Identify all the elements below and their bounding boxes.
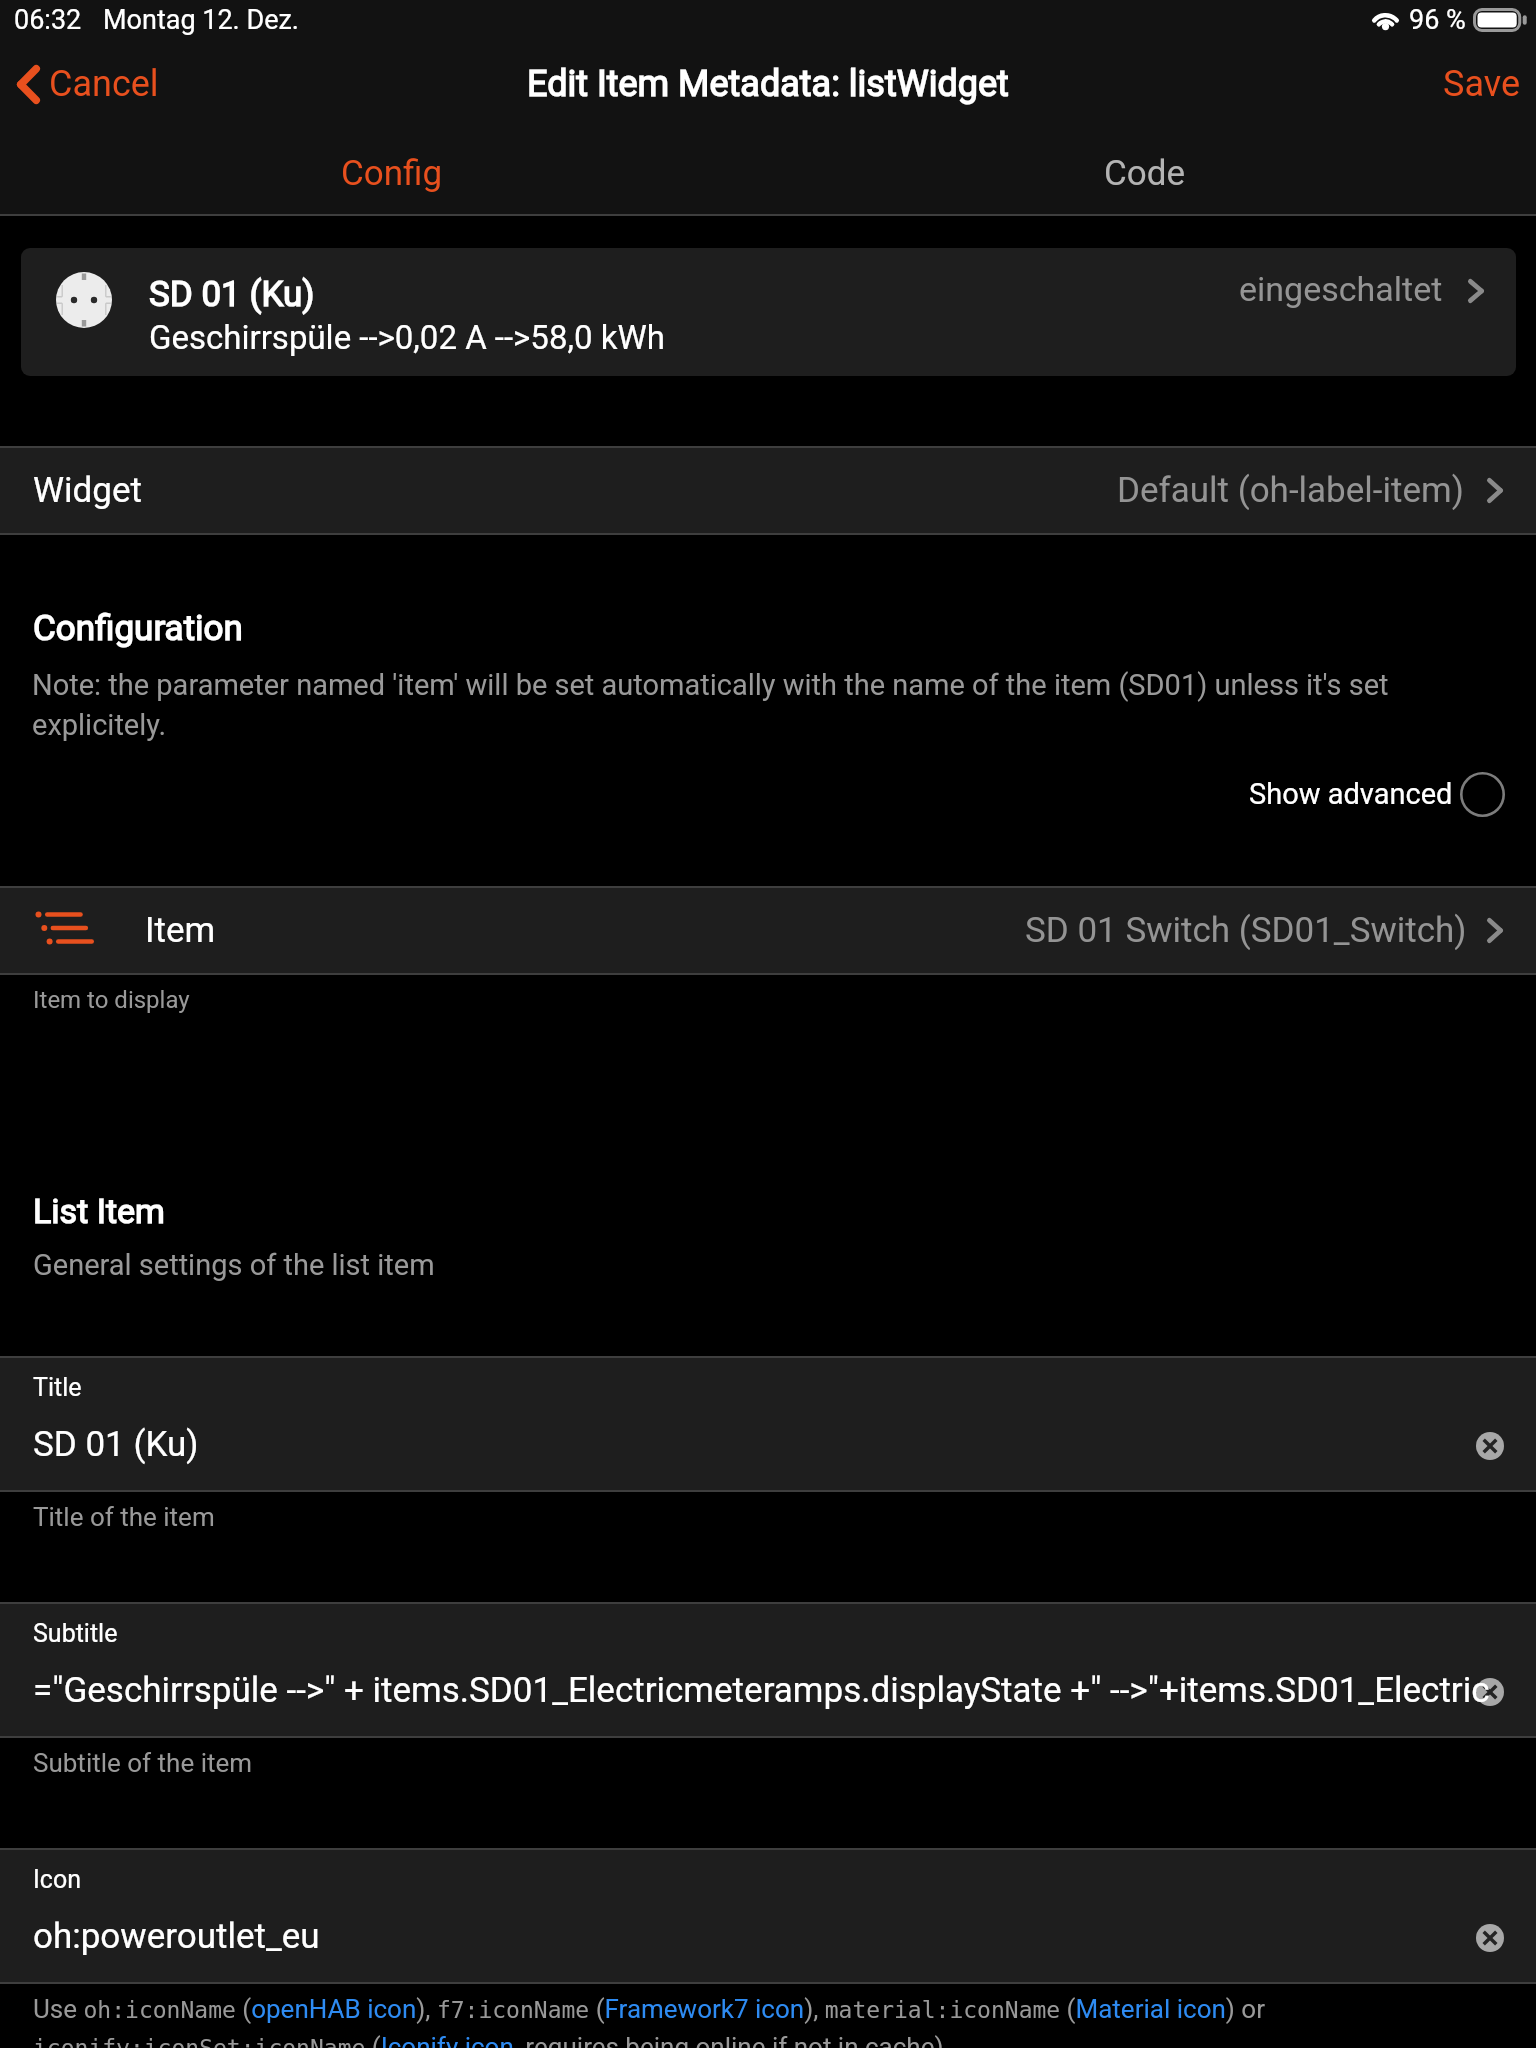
button[interactable]: Code — [768, 143, 1521, 203]
staticText: Use oh:iconName (openHAB icon), f7:iconN… — [33, 1994, 1473, 2048]
staticText: Item — [145, 910, 216, 951]
staticText: Show advanced — [1249, 777, 1453, 811]
staticText: 06:32 — [14, 4, 82, 36]
staticText: SD 01 (Ku) — [33, 1424, 1536, 1465]
staticText: SD 01 (Ku) — [149, 274, 315, 315]
staticText: General settings of the list item — [33, 1248, 435, 1282]
staticText: Widget — [33, 470, 142, 511]
staticText: Title — [33, 1373, 82, 1402]
button[interactable]: SD 01 (Ku) — [21, 248, 1516, 376]
staticText: Note: the parameter named 'item' will be… — [32, 668, 1432, 742]
staticText: Default (oh-label-item) — [1117, 470, 1464, 511]
other: Wi-Fi — [1371, 9, 1400, 30]
button[interactable]: Title — [0, 1358, 1536, 1490]
button[interactable]: Cancel — [0, 58, 165, 110]
staticText: Item to display — [33, 986, 190, 1014]
staticText: ="Geschirrspüle -->" + items.SD01_Electr… — [33, 1670, 1536, 1711]
staticText: SD 01 Switch (SD01_Switch) — [1025, 910, 1467, 951]
button[interactable]: Show advanced — [1249, 770, 1505, 818]
staticText: oh:poweroutlet_eu — [33, 1916, 1536, 1957]
staticText: Edit Item Metadata: listWidget — [527, 63, 1009, 105]
staticText: eingeschaltet — [1239, 269, 1443, 309]
button[interactable]: Subtitle — [0, 1604, 1536, 1736]
button[interactable]: Clear Subtitle — [1476, 1678, 1504, 1706]
staticText: Icon — [33, 1865, 81, 1894]
staticText: 96 % — [1409, 4, 1466, 36]
button[interactable]: Widget — [0, 448, 1536, 533]
staticText: List Item — [33, 1191, 165, 1231]
staticText: Subtitle of the item — [33, 1748, 253, 1778]
button[interactable]: Clear Title — [1476, 1432, 1504, 1460]
button[interactable]: Icon — [0, 1850, 1536, 1982]
staticText: Save — [1443, 63, 1520, 105]
staticText: Geschirrspüle -->0,02 A -->58,0 kWh — [149, 318, 665, 357]
staticText: Config — [341, 153, 443, 194]
staticText: Subtitle — [33, 1619, 118, 1648]
button[interactable]: Save — [1423, 58, 1536, 110]
other: Battery — [1473, 8, 1526, 32]
button[interactable]: Item — [0, 888, 1536, 973]
staticText: Cancel — [49, 63, 159, 105]
button[interactable]: Config — [15, 143, 768, 203]
button[interactable]: Clear Icon — [1476, 1924, 1504, 1952]
staticText: Montag 12. Dez. — [103, 4, 299, 36]
staticText: Code — [1104, 153, 1186, 194]
staticText: Title of the item — [33, 1502, 215, 1532]
staticText: Configuration — [33, 608, 243, 649]
